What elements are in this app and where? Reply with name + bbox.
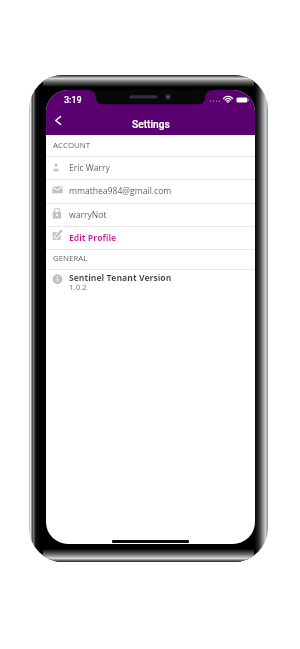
staticText: warryNot: [69, 209, 107, 221]
staticText: 1.0.2: [69, 281, 87, 292]
button[interactable]: mmathea984@gmail.com: [46, 179, 255, 202]
staticText: GENERAL: [53, 253, 88, 264]
staticText: Edit Profile: [69, 232, 117, 244]
staticText: Settings: [132, 119, 170, 131]
staticText: Sentinel Tenant Version: [69, 272, 172, 284]
staticText: 3:19: [64, 95, 82, 106]
button[interactable]: Eric Warry: [46, 156, 255, 179]
button[interactable]: Back: [47, 109, 69, 131]
button[interactable]: warryNot: [46, 203, 255, 226]
button[interactable]: Sentinel Tenant Version: [46, 270, 255, 296]
button[interactable]: Edit Profile: [46, 226, 255, 249]
staticText: ACCOUNT: [53, 140, 91, 151]
staticText: Eric Warry: [69, 162, 110, 174]
staticText: mmathea984@gmail.com: [69, 185, 172, 197]
